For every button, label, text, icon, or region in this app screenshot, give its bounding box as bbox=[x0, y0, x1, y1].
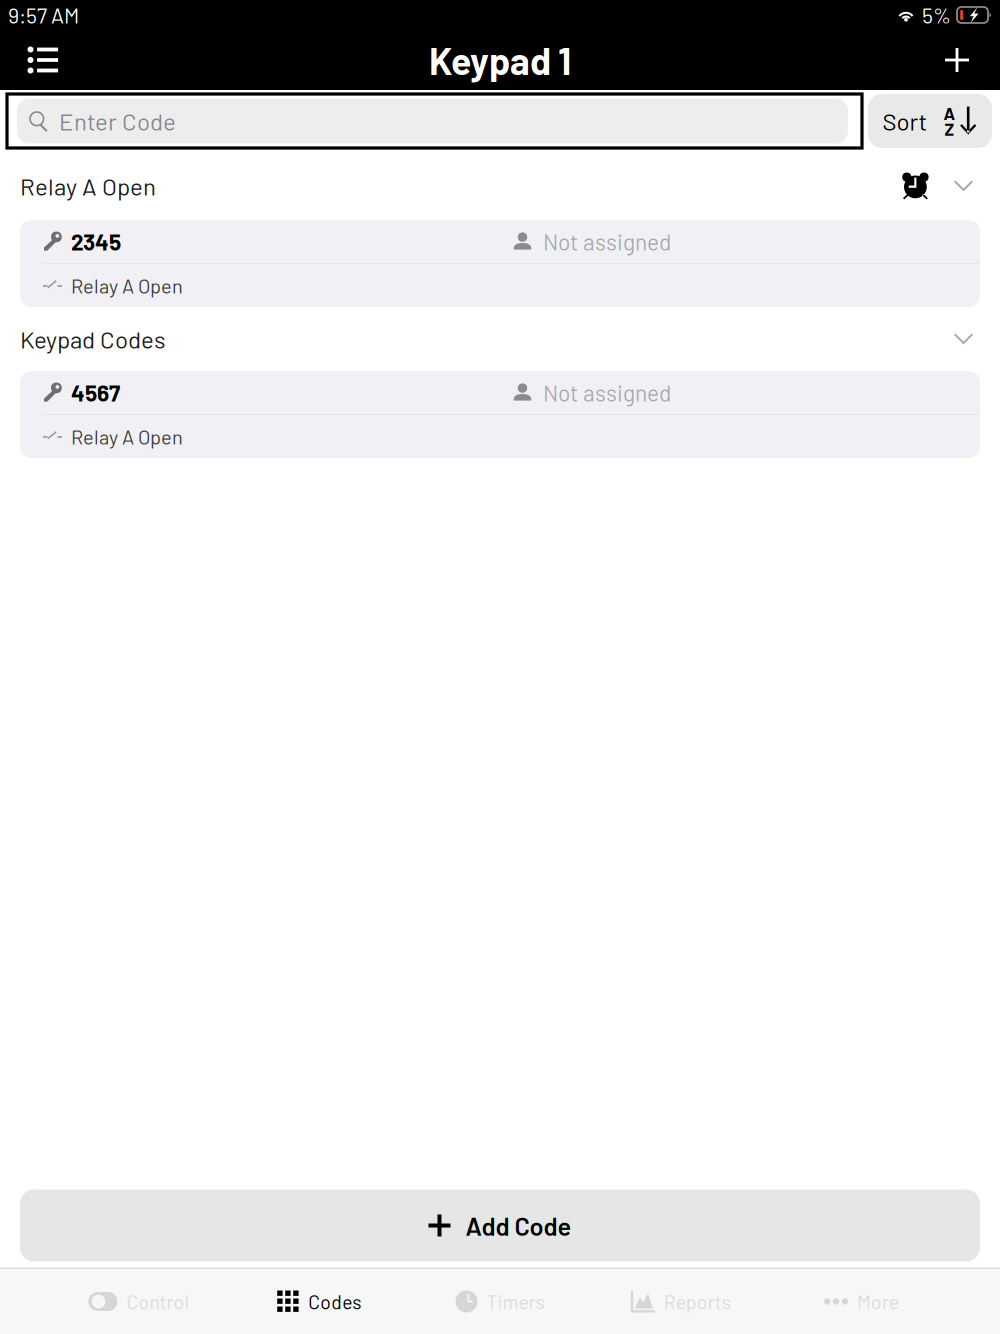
staticText: Z bbox=[944, 118, 954, 139]
staticText: Relay A Open bbox=[71, 273, 183, 297]
staticText: Sort bbox=[882, 107, 927, 135]
staticText: Keypad 1 bbox=[429, 38, 571, 82]
staticText: Relay A Open bbox=[71, 424, 183, 448]
staticText: 4567 bbox=[71, 379, 120, 406]
button[interactable]: Keypad Codes bbox=[0, 307, 1000, 371]
button[interactable]: Reports bbox=[590, 1269, 771, 1333]
button[interactable]: Timers bbox=[410, 1269, 590, 1333]
button[interactable]: Control bbox=[48, 1269, 229, 1333]
button[interactable]: Menu bbox=[12, 31, 74, 89]
button[interactable]: Relay A Open bbox=[20, 415, 980, 458]
staticText: Enter Code bbox=[59, 107, 176, 135]
staticText: More bbox=[857, 1290, 899, 1313]
staticText: Not assigned bbox=[543, 228, 671, 255]
staticText: Reports bbox=[664, 1290, 731, 1313]
button[interactable]: Relay A Open bbox=[0, 152, 1000, 220]
staticText: Codes bbox=[308, 1290, 361, 1313]
staticText: 9:57 AM bbox=[8, 2, 79, 28]
button[interactable]: Relay A Open bbox=[20, 264, 980, 307]
button[interactable]: Add code bbox=[926, 31, 988, 89]
staticText: Not assigned bbox=[543, 379, 671, 406]
button[interactable]: Codes bbox=[229, 1269, 410, 1333]
button[interactable]: Sort bbox=[868, 94, 992, 148]
staticText: Keypad Codes bbox=[20, 325, 166, 353]
staticText: Timers bbox=[486, 1290, 544, 1313]
staticText: Control bbox=[126, 1290, 188, 1313]
button[interactable]: 2345 bbox=[20, 220, 980, 263]
button[interactable]: 4567 bbox=[20, 371, 980, 414]
button[interactable]: Add Code bbox=[0, 1189, 1000, 1261]
staticText: Add Code bbox=[465, 1210, 571, 1241]
staticText: A bbox=[943, 103, 955, 123]
staticText: 5% bbox=[922, 2, 951, 28]
staticText: 2345 bbox=[71, 228, 121, 255]
button[interactable]: More bbox=[771, 1269, 952, 1333]
staticText: Relay A Open bbox=[20, 172, 156, 200]
